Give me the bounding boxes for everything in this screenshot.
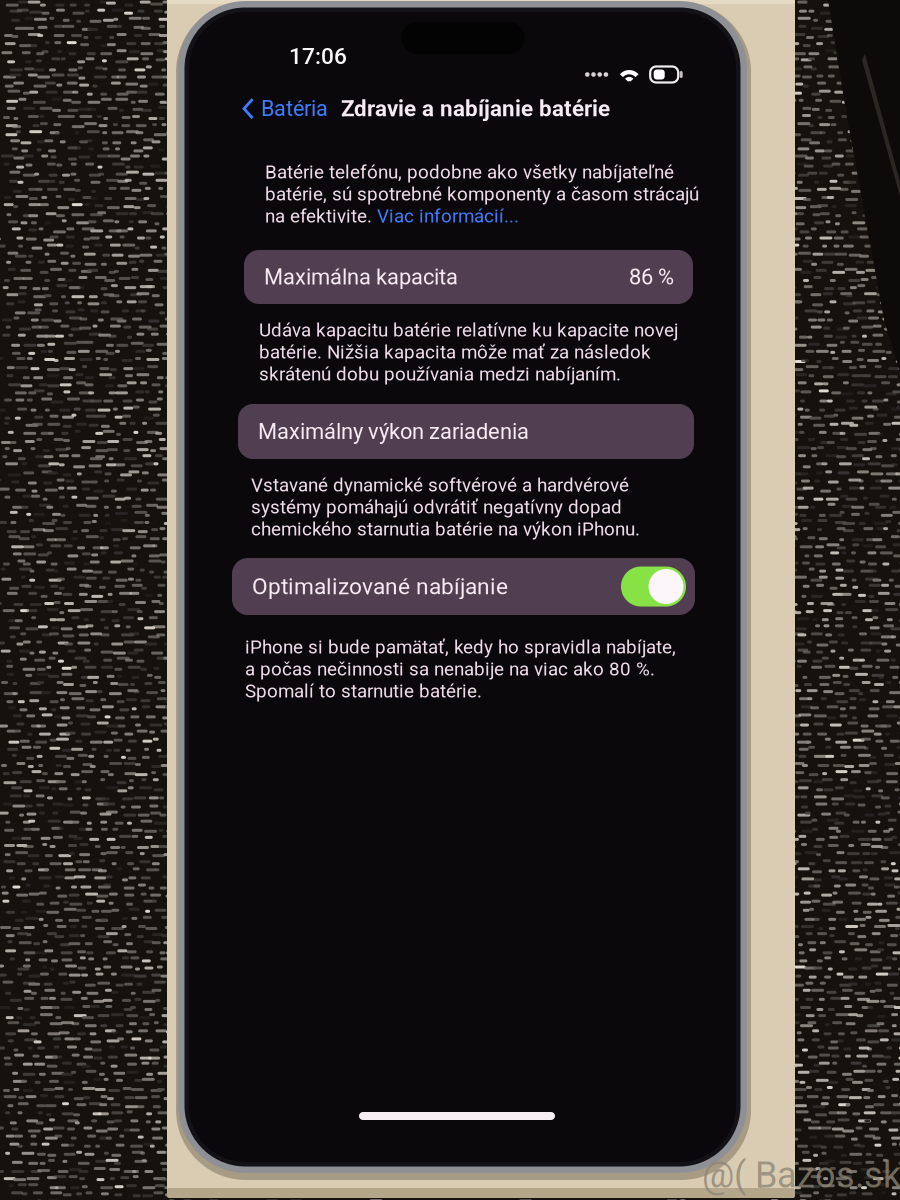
staticText: Spomalí to starnutie batérie. bbox=[245, 680, 482, 702]
staticText: iPhone si bude pamätať, kedy ho spravidl… bbox=[245, 636, 676, 658]
button[interactable]: Batéria bbox=[241, 93, 328, 124]
staticText: 17:06 bbox=[289, 43, 347, 70]
staticText: a počas nečinnosti sa nenabije na viac a… bbox=[245, 658, 655, 680]
staticText: batérie. Nižšia kapacita môže mať za nás… bbox=[259, 341, 651, 363]
staticText: Batérie telefónu, podobne ako všetky nab… bbox=[265, 161, 674, 183]
button[interactable]: Maximálna kapacita bbox=[244, 250, 693, 304]
staticText: Batéria bbox=[261, 96, 328, 121]
staticText: na efektivite. bbox=[265, 205, 377, 227]
staticText: Zdravie a nabíjanie batérie bbox=[341, 95, 610, 122]
button[interactable]: Viac informácií... bbox=[377, 205, 519, 227]
staticText: chemického starnutia batérie na výkon iP… bbox=[251, 518, 640, 540]
staticText: Maximálna kapacita bbox=[264, 264, 458, 290]
staticText: Vstavané dynamické softvérové a hardvéro… bbox=[251, 474, 629, 496]
button[interactable]: Maximálny výkon zariadenia bbox=[238, 404, 694, 459]
staticText: Optimalizované nabíjanie bbox=[252, 573, 508, 600]
staticText: Maximálny výkon zariadenia bbox=[258, 419, 529, 444]
staticText: batérie, sú spotrebné komponenty a časom… bbox=[265, 183, 699, 205]
staticText: 86 % bbox=[629, 264, 674, 290]
staticText: skrátenú dobu používania medzi nabíjaním… bbox=[259, 363, 621, 385]
button[interactable]: Optimalizované nabíjanie bbox=[232, 558, 695, 615]
staticText: @( Bazos.sk bbox=[702, 1154, 900, 1196]
staticText: Udáva kapacitu batérie relatívne ku kapa… bbox=[259, 319, 678, 341]
staticText: Viac informácií... bbox=[377, 205, 519, 227]
staticText: systémy pomáhajú odvrátiť negatívny dopa… bbox=[251, 496, 622, 518]
